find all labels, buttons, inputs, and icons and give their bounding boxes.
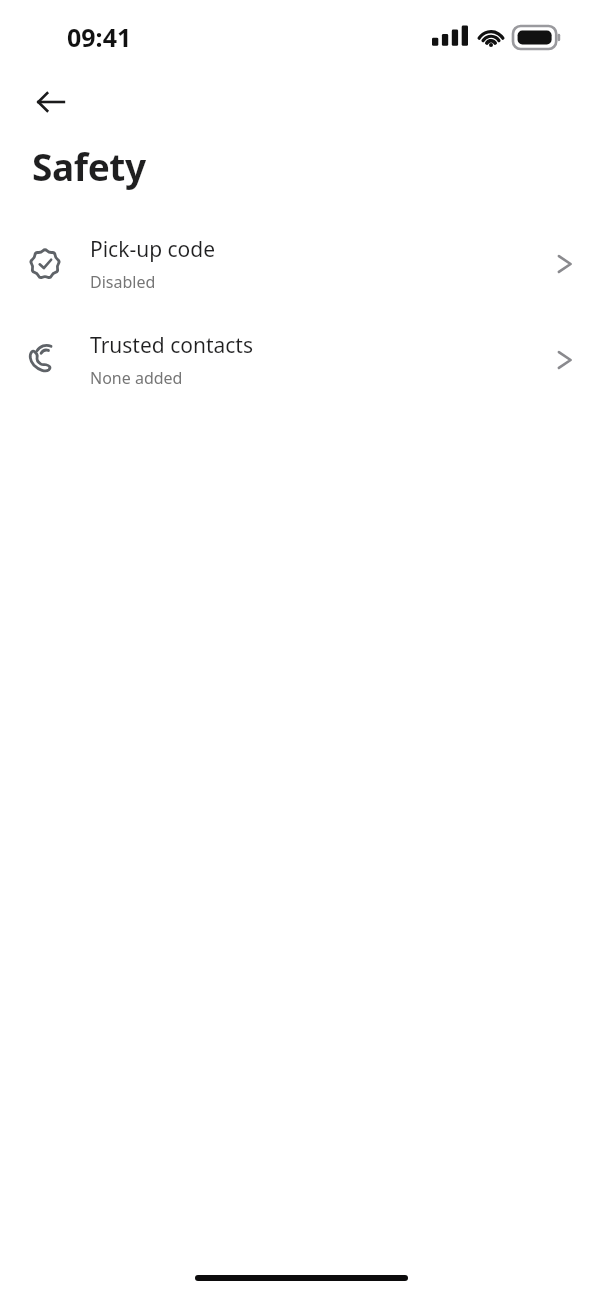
staticText: 09:41 bbox=[67, 20, 132, 54]
staticText: Disabled bbox=[90, 271, 156, 293]
button[interactable]: Back bbox=[23, 74, 79, 130]
button[interactable]: Trusted contacts bbox=[0, 312, 603, 408]
button[interactable]: Pick-up code bbox=[0, 216, 603, 312]
staticText: Safety bbox=[32, 141, 146, 191]
staticText: Trusted contacts bbox=[90, 331, 253, 360]
staticText: None added bbox=[90, 367, 183, 389]
staticText: Pick-up code bbox=[90, 235, 216, 264]
